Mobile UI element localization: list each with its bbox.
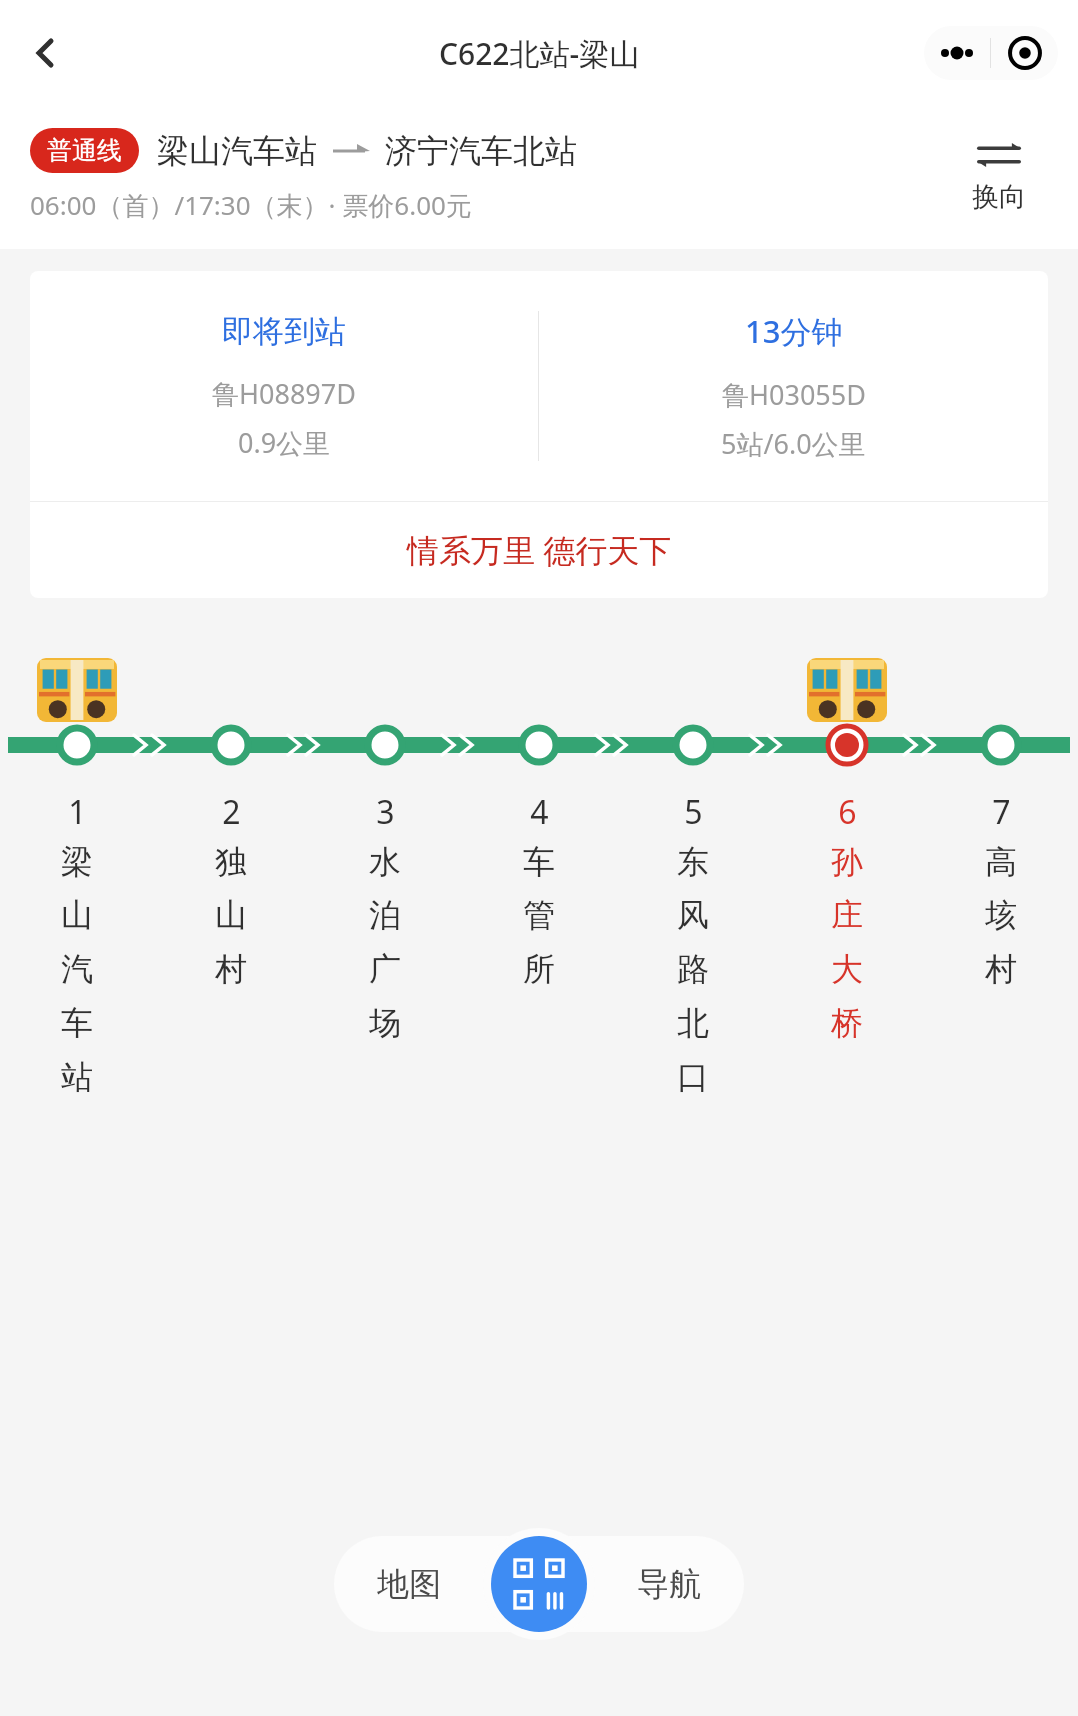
staticText: 地图 xyxy=(377,1564,441,1604)
staticText: 即将到站 xyxy=(222,312,346,351)
button[interactable]: 即将到站 xyxy=(30,271,538,501)
button[interactable]: 地图 xyxy=(334,1536,484,1632)
staticText: 0.9公里 xyxy=(238,424,331,461)
staticText: 3 xyxy=(376,790,395,834)
staticText: 独 山 村 xyxy=(215,842,247,990)
staticText: 5站/6.0公里 xyxy=(721,425,866,462)
staticText: 水 泊 广 场 xyxy=(369,842,401,1044)
staticText: 2 xyxy=(222,790,241,834)
button[interactable]: 13分钟 xyxy=(539,271,1048,501)
button[interactable]: Back xyxy=(16,24,74,82)
staticText: 梁 山 汽 车 站 xyxy=(61,842,93,1098)
staticText: 06:00（首）/17:30（末）· 票价6.00元 xyxy=(30,187,472,223)
staticText: 鲁H08897D xyxy=(212,375,356,412)
staticText: 情系万里 德行天下 xyxy=(407,528,672,572)
staticText: 鲁H03055D xyxy=(722,376,866,413)
staticText: 东 风 路 北 口 xyxy=(677,842,709,1098)
staticText: 济宁汽车北站 xyxy=(385,131,577,171)
staticText: 车 管 所 xyxy=(523,842,555,990)
button[interactable]: 4 xyxy=(462,790,616,990)
button[interactable]: 换向 xyxy=(944,138,1054,214)
staticText: 7 xyxy=(992,790,1011,834)
staticText: 普通线 xyxy=(47,135,122,166)
button[interactable]: Scan QR code xyxy=(491,1536,587,1632)
staticText: 换向 xyxy=(972,180,1026,214)
staticText: 梁山汽车站 xyxy=(157,131,317,171)
button[interactable]: 情系万里 德行天下 xyxy=(30,502,1048,598)
staticText: 高 垓 村 xyxy=(985,842,1017,990)
button[interactable]: More options xyxy=(924,26,990,80)
button[interactable]: 7 xyxy=(924,790,1078,990)
button[interactable]: 1 xyxy=(0,790,154,1098)
staticText: 5 xyxy=(684,790,703,834)
staticText: 13分钟 xyxy=(745,310,843,352)
staticText: 孙 庄 大 桥 xyxy=(831,842,863,1044)
button[interactable]: 2 xyxy=(154,790,308,990)
staticText: 导航 xyxy=(637,1564,701,1604)
staticText: 1 xyxy=(68,790,87,834)
button[interactable]: 6 xyxy=(770,790,924,1044)
staticText: C622北站-梁山 xyxy=(439,33,640,74)
staticText: 4 xyxy=(530,790,549,834)
button[interactable]: 3 xyxy=(308,790,462,1044)
button[interactable]: 5 xyxy=(616,790,770,1098)
button[interactable]: Close mini program xyxy=(991,26,1058,80)
button[interactable]: 导航 xyxy=(594,1536,744,1632)
staticText: 6 xyxy=(838,790,857,834)
